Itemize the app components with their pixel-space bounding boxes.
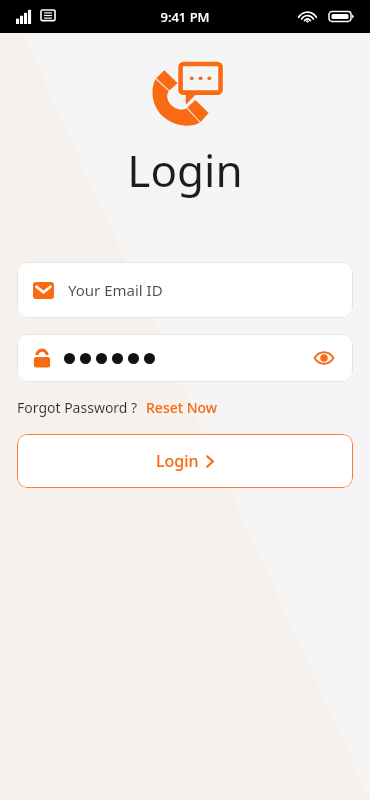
button[interactable]: Reset Now bbox=[146, 398, 218, 417]
button[interactable]: Your Email ID bbox=[17, 262, 353, 318]
staticText: Your Email ID bbox=[68, 280, 163, 300]
staticText: Login bbox=[0, 140, 370, 200]
button[interactable]: Login bbox=[17, 434, 353, 488]
button[interactable]: Show password bbox=[17, 334, 353, 382]
button[interactable]: Show password bbox=[311, 345, 337, 371]
staticText: Forgot Password ? bbox=[17, 398, 138, 417]
staticText: Reset Now bbox=[146, 398, 218, 417]
staticText: 9:41 PM bbox=[160, 8, 210, 26]
staticText: Login bbox=[156, 450, 199, 472]
